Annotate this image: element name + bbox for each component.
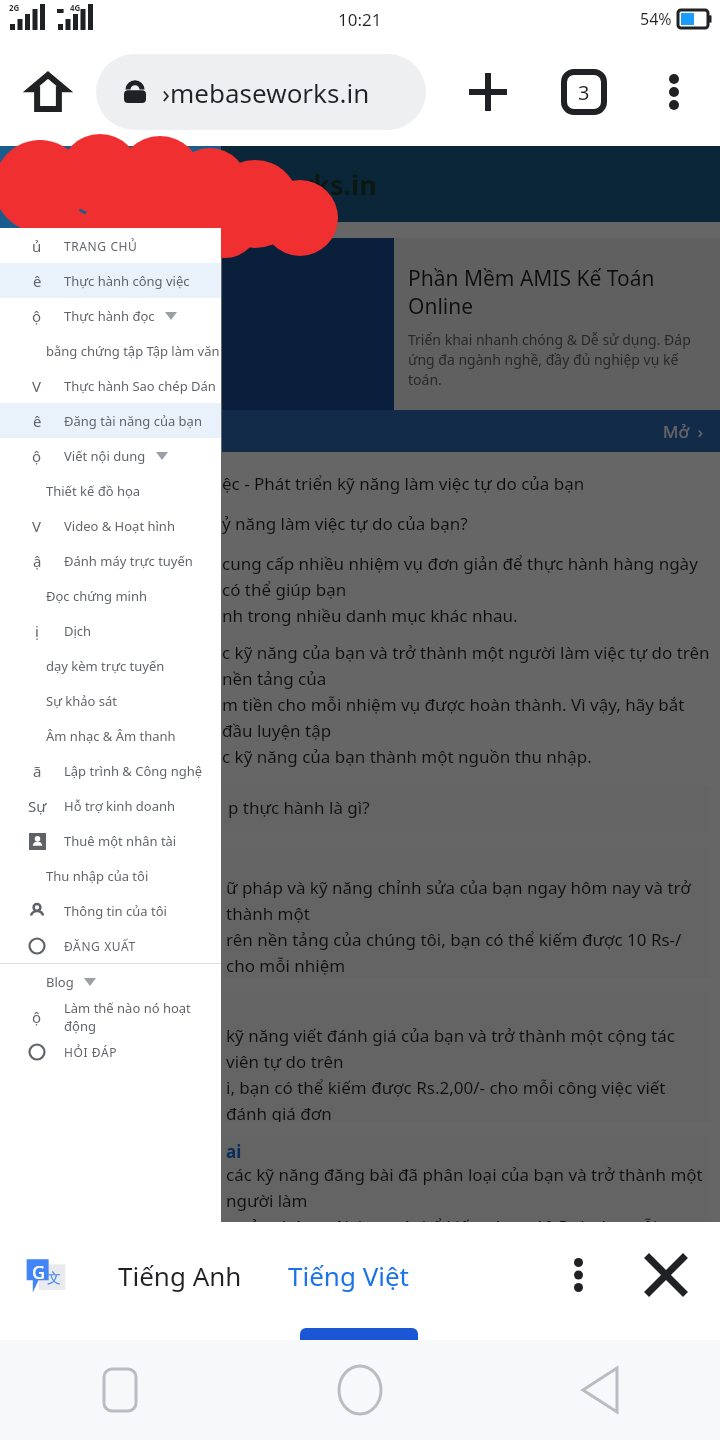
staticText: 文	[47, 1270, 61, 1288]
staticText: Đánh máy trực tuyến	[64, 552, 193, 570]
staticText: Đọc chứng minh	[46, 587, 147, 605]
button[interactable]: HỎI ĐÁP	[0, 1034, 221, 1069]
staticText: Tiếng Việt	[288, 1258, 410, 1293]
button[interactable]: Thuê một nhân tài	[0, 823, 221, 858]
button[interactable]: Blog	[0, 964, 221, 999]
staticText: Tiếng Anh	[118, 1258, 242, 1293]
staticText: 4G	[70, 2, 81, 13]
staticText: Sự khảo sát	[46, 692, 118, 710]
staticText: ĐĂNG XUẤT	[64, 938, 136, 954]
staticText: ộ	[32, 1007, 42, 1027]
staticText: ộ	[32, 306, 42, 326]
button[interactable]: ủ	[0, 228, 221, 263]
button[interactable]: Tiếng Việt	[278, 1248, 420, 1303]
staticText: p thực hành là gì?	[228, 796, 370, 819]
button[interactable]: ›mebaseworks.in	[96, 54, 426, 130]
staticText: cung cấp nhiều nhiệm vụ đơn giản để thực…	[222, 552, 710, 627]
button[interactable]: More options	[642, 60, 706, 124]
staticText: Thực hành Sao chép Dán	[64, 377, 216, 395]
staticText: Sự	[28, 796, 47, 816]
staticText: ê	[33, 411, 42, 431]
staticText: ê	[33, 271, 42, 291]
button[interactable]: Mở ›	[222, 410, 720, 452]
staticText: 3	[578, 79, 590, 106]
staticText: ỷ năng làm việc tự do của bạn?	[222, 512, 468, 535]
staticText: Dịch	[64, 622, 92, 640]
button[interactable]: Back	[480, 1340, 720, 1440]
button[interactable]: Recents	[0, 1340, 240, 1440]
staticText: Hỗ trợ kinh doanh	[64, 797, 176, 815]
staticText: Viết nội dung	[64, 447, 146, 465]
button[interactable]: ê	[0, 263, 221, 298]
button[interactable]: Tabs	[548, 56, 620, 128]
button[interactable]: ã	[0, 753, 221, 788]
staticText: V	[32, 376, 42, 396]
staticText: Thu nhập của tôi	[46, 867, 149, 885]
button[interactable]: Sự khảo sát	[0, 683, 221, 718]
staticText: ệc - Phát triển kỹ năng làm việc tự do c…	[222, 472, 585, 495]
button[interactable]: ộ	[0, 999, 221, 1034]
staticText: ữ pháp và kỹ năng chỉnh sửa của bạn ngay…	[226, 876, 706, 978]
staticText: các kỹ năng đăng bài đã phân loại của bạ…	[226, 1163, 706, 1222]
staticText: se Works.in	[222, 166, 377, 203]
staticText: Lập trình & Công nghệ	[64, 762, 203, 780]
staticText: Âm nhạc & Âm thanh	[46, 727, 176, 745]
staticText: ộ	[32, 446, 42, 466]
staticText: Đăng tài năng của bạn	[64, 412, 202, 430]
button[interactable]: Đọc chứng minh	[0, 578, 221, 613]
staticText: ủ	[32, 236, 42, 256]
staticText: TRANG CHỦ	[64, 238, 138, 254]
staticText: c kỹ năng của bạn và trở thành một người…	[222, 641, 710, 768]
staticText: kỹ năng viết đánh giá của bạn và trở thà…	[226, 1024, 706, 1122]
staticText: ậ	[33, 551, 42, 571]
staticText: Video & Hoạt hình	[64, 517, 175, 535]
button[interactable]: ĐĂNG XUẤT	[0, 928, 221, 963]
staticText: ›mebaseworks.in	[162, 75, 370, 110]
button[interactable]: Close	[634, 1243, 698, 1307]
button[interactable]: Sự	[0, 788, 221, 823]
staticText: 2G	[9, 2, 20, 13]
staticText: Mở ›	[663, 420, 704, 443]
button[interactable]: ậ	[0, 543, 221, 578]
button[interactable]: New tab	[452, 56, 524, 128]
button[interactable]: ê	[0, 403, 221, 438]
staticText: Thực hành công việc	[64, 272, 190, 290]
staticText: 10:21	[338, 8, 382, 31]
button[interactable]: Âm nhạc & Âm thanh	[0, 718, 221, 753]
button[interactable]: bằng chứng tập Tập làm văn	[0, 333, 221, 368]
staticText: Thuê một nhân tài	[64, 832, 177, 850]
staticText: Thiết kế đồ họa	[46, 482, 141, 500]
button[interactable]: Thu nhập của tôi	[0, 858, 221, 893]
staticText: HỎI ĐÁP	[64, 1044, 118, 1060]
staticText: ai	[226, 1140, 242, 1163]
button[interactable]: ị	[0, 613, 221, 648]
staticText: Blog	[46, 973, 74, 991]
staticText: ã	[33, 761, 42, 781]
button[interactable]: Home	[18, 62, 78, 122]
button[interactable]: ộ	[0, 438, 221, 473]
staticText: 54%	[640, 8, 672, 30]
staticText: dạy kèm trực tuyến	[46, 657, 165, 675]
button[interactable]: Thông tin của tôi	[0, 893, 221, 928]
staticText: bằng chứng tập Tập làm văn	[46, 342, 220, 360]
staticText: G	[32, 1260, 46, 1285]
staticText: Làm thế nào nó hoạt động	[64, 999, 221, 1034]
staticText: Thông tin của tôi	[64, 902, 167, 920]
button[interactable]: dạy kèm trực tuyến	[0, 648, 221, 683]
staticText: V	[32, 516, 42, 536]
button[interactable]: Translate options	[546, 1243, 610, 1307]
staticText: ị	[35, 621, 39, 641]
staticText: Triển khai nhanh chóng & Dễ sử dụng. Đáp…	[408, 330, 710, 389]
staticText: Thực hành đọc	[64, 307, 155, 325]
button[interactable]: Home	[240, 1340, 480, 1440]
button[interactable]: V	[0, 508, 221, 543]
button[interactable]: ộ	[0, 298, 221, 333]
staticText: Phần Mềm AMIS Kế Toán Online	[408, 264, 655, 320]
button[interactable]: Thiết kế đồ họa	[0, 473, 221, 508]
button[interactable]: Google Translate	[20, 1249, 72, 1301]
button[interactable]: V	[0, 368, 221, 403]
button[interactable]: Tiếng Anh	[108, 1248, 252, 1303]
